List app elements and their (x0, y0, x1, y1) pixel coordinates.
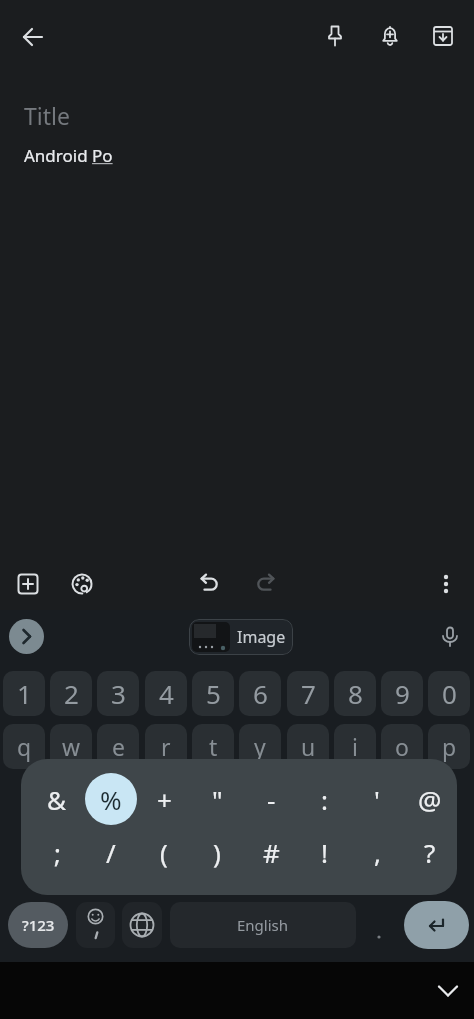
button[interactable]: o (381, 724, 423, 769)
button[interactable] (198, 572, 222, 596)
button[interactable] (16, 572, 40, 596)
button[interactable]: 0 (428, 671, 470, 716)
staticText: ?123 (22, 915, 55, 935)
staticText: Image (237, 626, 286, 648)
button[interactable] (85, 773, 137, 825)
staticText: + (157, 782, 172, 817)
button[interactable] (21, 25, 45, 49)
staticText: y (254, 731, 266, 762)
staticText: 7 (301, 676, 316, 711)
button[interactable]: i (334, 724, 376, 769)
button[interactable]: 3 (97, 671, 139, 716)
staticText: ; (54, 835, 61, 870)
button[interactable]: English (170, 902, 356, 948)
button[interactable]: w (50, 724, 92, 769)
button[interactable]: ?123 (8, 902, 68, 948)
button[interactable]: 7 (287, 671, 329, 716)
button[interactable]: 6 (239, 671, 281, 716)
button[interactable] (436, 980, 460, 1004)
staticText: % (100, 782, 122, 817)
staticText: Title (24, 100, 70, 131)
button[interactable]: 5 (192, 671, 234, 716)
staticText: 8 (348, 676, 363, 711)
staticText: 3 (111, 676, 126, 711)
button[interactable] (76, 902, 115, 948)
staticText: @ (418, 782, 442, 817)
button[interactable]: r (145, 724, 187, 769)
button[interactable] (404, 901, 469, 949)
button[interactable] (122, 902, 162, 948)
button[interactable]: e (97, 724, 139, 769)
button[interactable]: 4 (145, 671, 187, 716)
staticText: i (352, 731, 358, 762)
button[interactable] (253, 572, 277, 596)
staticText: ' (374, 782, 380, 817)
button[interactable]: 2 (50, 671, 92, 716)
button[interactable]: q (3, 724, 45, 769)
staticText: ? (424, 835, 436, 870)
button[interactable] (76, 902, 115, 941)
button[interactable] (323, 24, 347, 48)
staticText: " (212, 782, 223, 817)
button[interactable]: 9 (381, 671, 423, 716)
button[interactable] (431, 24, 455, 48)
staticText: o (395, 731, 409, 762)
button[interactable]: p (428, 724, 470, 769)
staticText: r (161, 731, 171, 762)
button[interactable] (189, 619, 293, 655)
button[interactable] (438, 625, 462, 649)
button[interactable] (122, 902, 162, 942)
staticText: & (47, 782, 67, 817)
staticText: # (263, 835, 280, 870)
staticText: p (442, 731, 457, 762)
button[interactable] (9, 619, 44, 654)
staticText: ( (160, 835, 168, 870)
staticText: / (106, 835, 116, 870)
staticText: t (209, 731, 218, 762)
staticText: 0 (442, 676, 457, 711)
staticText: e (112, 731, 125, 762)
staticText: ! (321, 835, 328, 870)
staticText: , (374, 835, 381, 870)
button[interactable]: u (287, 724, 329, 769)
button[interactable] (434, 572, 458, 596)
staticText: : (321, 782, 328, 817)
staticText: Android Po (24, 144, 113, 167)
button[interactable] (70, 572, 94, 596)
staticText: English (237, 915, 289, 935)
button[interactable] (378, 24, 402, 48)
button[interactable]: 1 (3, 671, 45, 716)
button[interactable]: 8 (334, 671, 376, 716)
staticText: - (267, 782, 276, 817)
staticText: 9 (395, 676, 410, 711)
button[interactable]: y (239, 724, 281, 769)
staticText: 4 (159, 676, 174, 711)
staticText: 5 (206, 676, 221, 711)
staticText: 2 (64, 676, 79, 711)
staticText: 6 (253, 676, 268, 711)
button[interactable]: t (192, 724, 234, 769)
staticText: u (301, 731, 316, 762)
staticText: ) (213, 835, 221, 870)
staticText: w (62, 731, 81, 762)
staticText: 1 (17, 676, 32, 711)
staticText: q (17, 731, 32, 762)
